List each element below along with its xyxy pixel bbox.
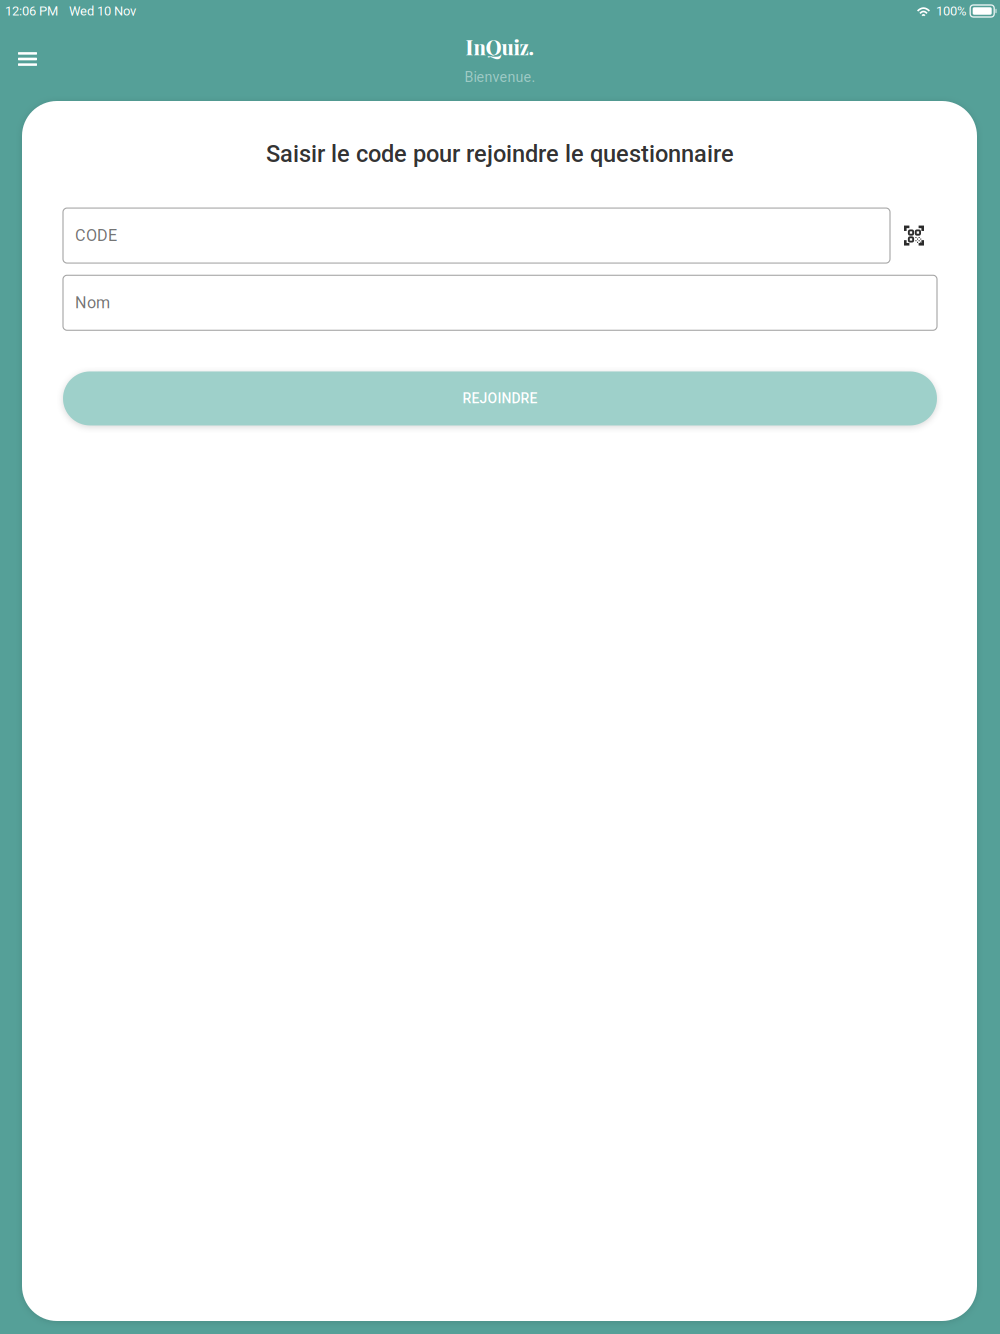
staticText: CODE [75, 226, 117, 245]
staticText: Bienvenue. [464, 69, 535, 85]
staticText: Saisir le code pour rejoindre le questio… [266, 140, 734, 168]
button[interactable]: REJOINDRE [63, 371, 937, 425]
button[interactable]: Scan QR code [890, 226, 937, 246]
button[interactable]: CODE [63, 208, 890, 263]
button[interactable]: Menu [0, 43, 53, 74]
staticText: Nom [75, 293, 110, 312]
staticText: REJOINDRE [462, 390, 537, 407]
staticText: Wed 10 Nov [69, 3, 136, 19]
staticText: InQuiz. [465, 34, 534, 60]
button[interactable]: Nom [63, 275, 937, 330]
staticText: 100% [936, 3, 966, 19]
staticText: 12:06 PM [5, 3, 58, 19]
